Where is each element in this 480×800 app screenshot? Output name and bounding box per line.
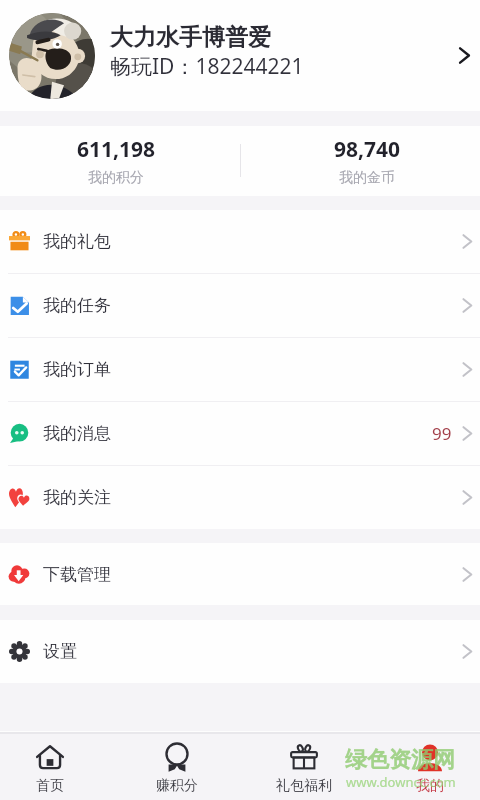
staticText: 我的订单 (43, 359, 111, 380)
staticText: 绿色资源网 (345, 746, 455, 774)
button[interactable]: 赚积分 (122, 734, 232, 800)
other: 首页 (36, 744, 64, 772)
staticText: 611,198 (77, 135, 156, 164)
button[interactable]: 我的任务 (0, 274, 480, 337)
button[interactable]: 礼包福利 (249, 734, 359, 800)
staticText: www.downcc.com (346, 773, 456, 791)
other: 赚积分 (163, 744, 191, 772)
staticText: 大力水手博普爱 (110, 23, 271, 52)
staticText: 赚积分 (156, 777, 198, 795)
staticText: 我的关注 (43, 487, 111, 508)
staticText: 设置 (43, 641, 77, 662)
button[interactable]: 我的订单 (0, 338, 480, 401)
button[interactable]: 设置 (0, 620, 480, 683)
staticText: 首页 (36, 777, 64, 795)
other: 我的 (416, 744, 444, 772)
staticText: 99 (432, 422, 452, 445)
button[interactable]: 我的礼包 (0, 210, 480, 273)
staticText: 我的 (416, 777, 444, 795)
button[interactable]: 我的 (375, 734, 480, 800)
staticText: 我的消息 (43, 423, 111, 444)
button[interactable]: 我的关注 (0, 466, 480, 529)
staticText: 我的礼包 (43, 231, 111, 252)
staticText: 我的积分 (88, 169, 144, 187)
staticText: 我的任务 (43, 295, 111, 316)
button[interactable]: 下载管理 (0, 543, 480, 605)
button[interactable]: 611,198 (26, 126, 206, 196)
button[interactable]: 我的消息 (0, 402, 480, 465)
staticText: 礼包福利 (276, 777, 332, 795)
staticText: 我的金币 (339, 169, 395, 187)
button[interactable]: 98,740 (277, 126, 457, 196)
other: 礼包福利 (290, 744, 318, 772)
staticText: 畅玩ID：182244221 (110, 52, 304, 81)
button[interactable]: 首页 (0, 734, 105, 800)
button[interactable]: 大力水手博普爱 (0, 0, 480, 111)
staticText: 98,740 (334, 135, 401, 164)
staticText: 下载管理 (43, 564, 111, 585)
